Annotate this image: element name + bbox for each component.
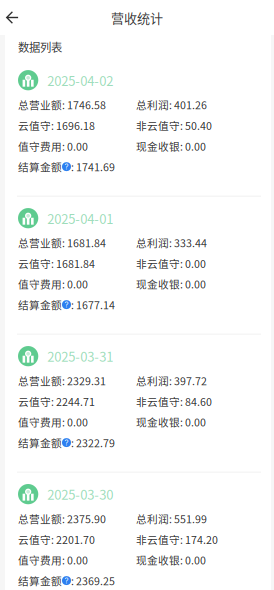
staticText: 2025-04-02 (47, 71, 113, 90)
staticText: 结算金额 (18, 297, 62, 312)
staticText: 值守费用: 0.00 (18, 276, 88, 292)
staticText: 结算金额 (18, 573, 62, 588)
staticText: 非云值守: 84.60 (136, 393, 212, 409)
staticText: ? (64, 300, 68, 309)
staticText: 非云值守: 50.40 (136, 118, 212, 133)
staticText: 总营业额: 2329.31 (18, 373, 106, 388)
staticText: : 1677.14 (71, 297, 115, 312)
staticText: 结算金额 (18, 159, 62, 174)
staticText: 总营业额: 1681.84 (18, 235, 106, 250)
staticText: ? (64, 162, 68, 171)
staticText: ? (64, 438, 68, 447)
staticText: 云值守: 1681.84 (18, 256, 95, 271)
staticText: 现金收银: 0.00 (136, 552, 206, 568)
staticText: 总营业额: 1746.58 (18, 97, 106, 112)
staticText: 结算金额 (18, 435, 62, 450)
staticText: 现金收银: 0.00 (136, 414, 206, 430)
staticText: 云值守: 2201.70 (18, 531, 95, 547)
staticText: ? (64, 576, 68, 585)
staticText: : 2369.25 (71, 573, 115, 588)
staticText: 非云值守: 0.00 (136, 256, 206, 271)
staticText: 值守费用: 0.00 (18, 552, 88, 568)
staticText: 2025-03-30 (47, 485, 113, 504)
staticText: 营收统计 (111, 8, 163, 27)
staticText: 数据列表 (18, 39, 62, 55)
staticText: 云值守: 2244.71 (18, 393, 95, 409)
staticText: 值守费用: 0.00 (18, 414, 88, 430)
staticText: 总利润: 397.72 (136, 373, 207, 388)
staticText: 非云值守: 174.20 (136, 531, 218, 547)
staticText: : 1741.69 (71, 159, 115, 174)
staticText: 总营业额: 2375.90 (18, 511, 106, 526)
staticText: 2025-03-31 (47, 347, 113, 366)
staticText: 现金收银: 0.00 (136, 276, 206, 292)
staticText: 总利润: 401.26 (136, 97, 207, 112)
button[interactable]: 返回 (0, 0, 31, 35)
staticText: 值守费用: 0.00 (18, 138, 88, 154)
staticText: 总利润: 333.44 (136, 235, 207, 250)
staticText: 总利润: 551.99 (136, 511, 207, 526)
staticText: 2025-04-01 (47, 209, 113, 228)
staticText: 现金收银: 0.00 (136, 138, 206, 154)
staticText: : 2322.79 (71, 435, 115, 450)
staticText: 云值守: 1696.18 (18, 118, 95, 133)
